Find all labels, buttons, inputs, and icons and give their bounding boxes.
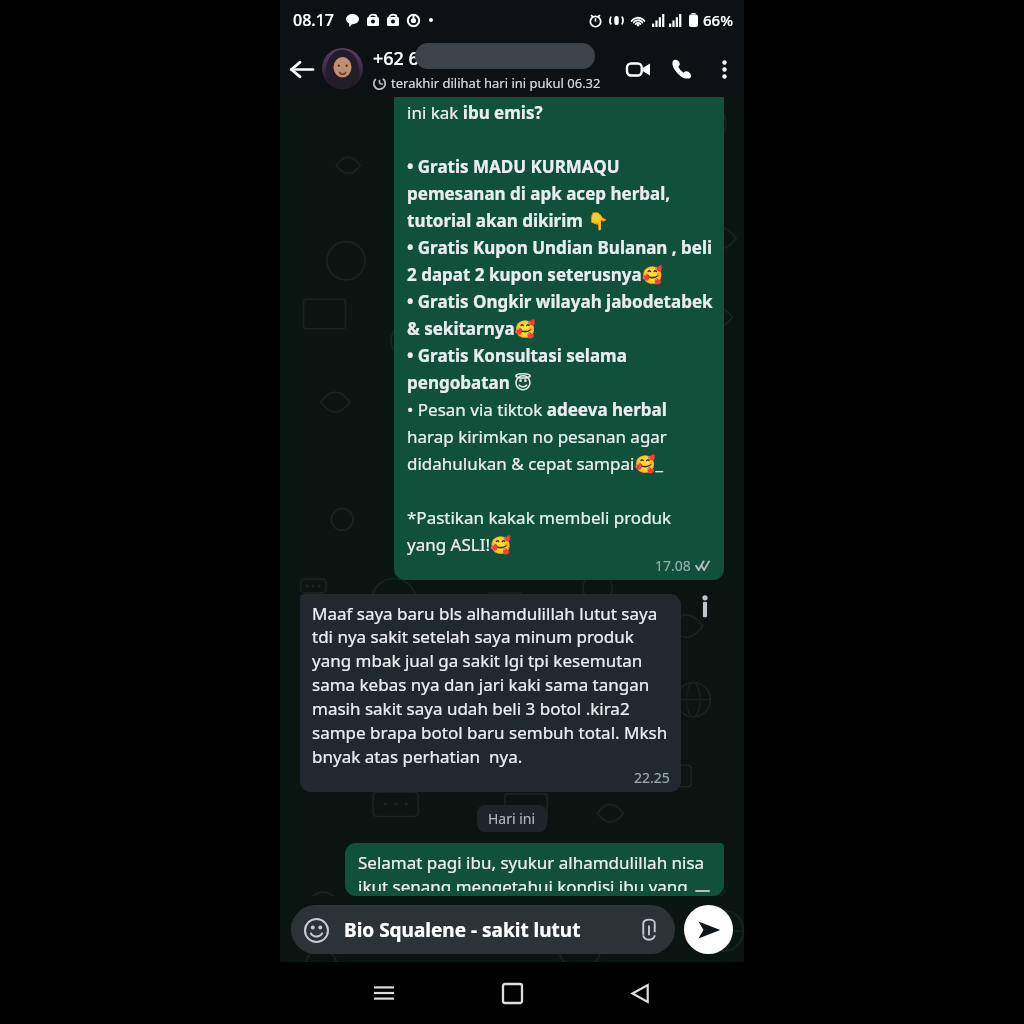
button[interactable]: Recent apps xyxy=(360,969,408,1017)
staticText: Hari ini xyxy=(488,809,536,828)
staticText: Bio Squalene - sakit lutut xyxy=(344,917,581,943)
staticText: 08.17 xyxy=(293,9,334,31)
staticText: 17.08 xyxy=(655,556,691,575)
other: Attach xyxy=(637,918,661,942)
button[interactable]: Back xyxy=(280,48,322,90)
staticText: ini kak ibu emis? • Gratis MADU KURMAQU … xyxy=(407,101,713,556)
button[interactable]: More options xyxy=(704,49,744,89)
button[interactable]: Home xyxy=(488,969,536,1017)
staticText: Selamat pagi ibu, syukur alhamdulillah n… xyxy=(358,851,713,891)
staticText: 66% xyxy=(703,10,733,30)
staticText: +62 6 xyxy=(373,46,419,71)
staticText: 22.25 xyxy=(634,768,670,787)
button[interactable]: Video call xyxy=(616,47,660,91)
button[interactable]: Emoji xyxy=(291,905,675,954)
other: Emoji xyxy=(303,917,329,943)
button[interactable]: Call xyxy=(660,47,704,91)
staticText: terakhir dilihat hari ini pukul 06.32 xyxy=(391,74,601,92)
button[interactable]: Send xyxy=(684,905,733,954)
button[interactable]: Back xyxy=(616,969,664,1017)
staticText: Maaf saya baru bls alhamdulillah lutut s… xyxy=(312,602,670,768)
